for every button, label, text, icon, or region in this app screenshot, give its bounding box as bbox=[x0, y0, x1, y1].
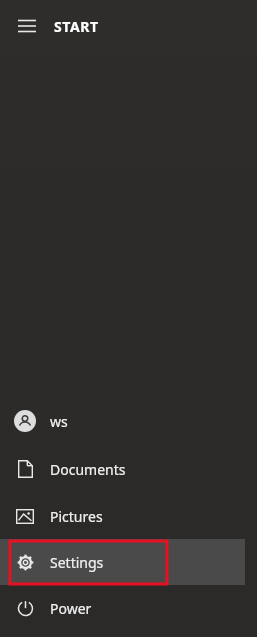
button[interactable]: Power bbox=[0, 585, 257, 631]
button[interactable]: ws bbox=[0, 397, 257, 445]
staticText: ws bbox=[50, 412, 68, 431]
staticText: Documents bbox=[50, 460, 126, 479]
button[interactable]: Menu bbox=[0, 0, 257, 52]
staticText: Settings bbox=[50, 553, 104, 572]
button[interactable]: Menu bbox=[0, 0, 54, 52]
button[interactable]: Pictures bbox=[0, 493, 257, 539]
staticText: Power bbox=[50, 599, 92, 618]
button[interactable]: Documents bbox=[0, 445, 257, 493]
staticText: START bbox=[54, 17, 99, 36]
button[interactable]: Settings bbox=[0, 539, 257, 585]
staticText: Pictures bbox=[50, 507, 103, 526]
